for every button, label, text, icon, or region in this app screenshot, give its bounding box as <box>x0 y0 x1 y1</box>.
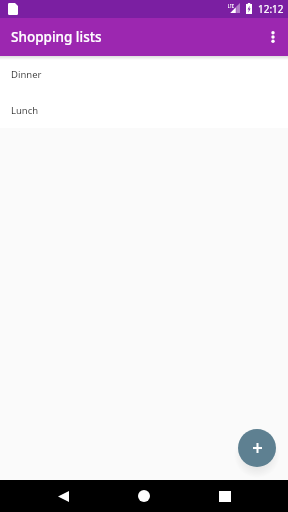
button[interactable]: Lunch <box>0 92 288 128</box>
staticText: 12:12 <box>258 2 284 16</box>
button[interactable]: Back <box>45 480 81 512</box>
button[interactable]: Add list <box>238 429 276 467</box>
button[interactable]: Dinner <box>0 56 288 92</box>
button[interactable]: Home <box>126 480 162 512</box>
button[interactable]: Recent apps <box>207 480 243 512</box>
staticText: Shopping lists <box>11 28 102 46</box>
button[interactable]: More options <box>254 18 288 56</box>
staticText: Lunch <box>11 104 39 117</box>
staticText: Dinner <box>11 68 42 81</box>
